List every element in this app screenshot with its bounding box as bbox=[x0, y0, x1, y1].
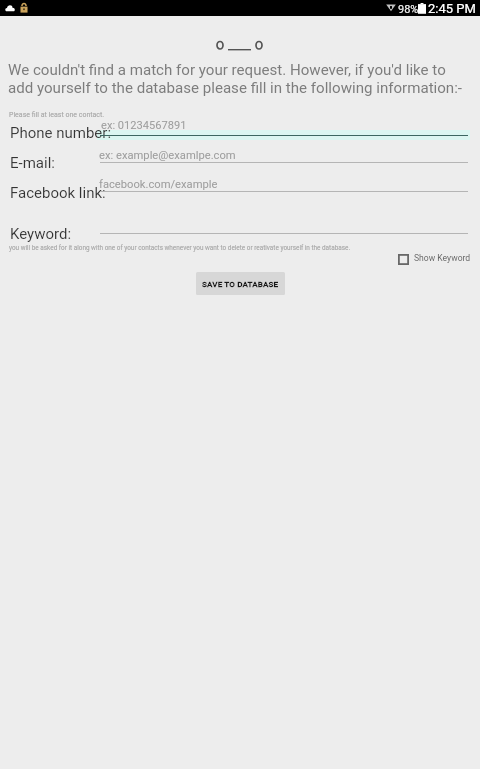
staticText: SAVE TO DATABASE bbox=[202, 279, 279, 288]
staticText: facebook.com/example bbox=[99, 178, 218, 191]
staticText: ex: example@examlpe.com bbox=[99, 149, 236, 162]
staticText: We couldn't find a match for your reques… bbox=[8, 61, 463, 97]
staticText: ex: 01234567891 bbox=[101, 119, 187, 132]
staticText: 2:45 PM bbox=[428, 1, 476, 16]
staticText: Phone number: bbox=[10, 124, 112, 142]
staticText: 98% bbox=[398, 3, 419, 16]
staticText: Please fill at least one contact. bbox=[9, 111, 105, 119]
button[interactable]: Keyword: bbox=[97, 217, 470, 238]
button[interactable]: Phone number: bbox=[97, 119, 470, 140]
staticText: you will be asked for it along with one … bbox=[9, 244, 351, 252]
button[interactable]: Show Keyword bbox=[398, 252, 471, 263]
staticText: Facebook link: bbox=[10, 184, 106, 202]
button[interactable]: Facebook link: bbox=[97, 175, 470, 196]
button[interactable]: E-mail: bbox=[97, 146, 470, 167]
staticText: Keyword: bbox=[10, 225, 72, 243]
staticText: Show Keyword bbox=[414, 253, 471, 263]
button[interactable]: SAVE TO DATABASE bbox=[196, 272, 285, 295]
staticText: E-mail: bbox=[10, 154, 55, 172]
